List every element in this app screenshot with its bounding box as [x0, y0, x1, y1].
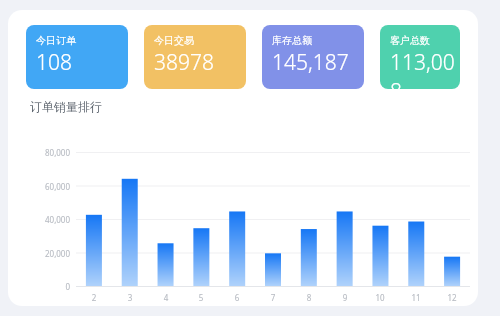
staticText: 108 — [36, 48, 72, 77]
staticText: 库存总额 — [272, 34, 312, 47]
staticText: 今日订单 — [36, 34, 76, 47]
staticText: 6 — [223, 292, 251, 303]
staticText: 60,000 — [22, 181, 70, 192]
staticText: 0 — [22, 281, 70, 292]
button[interactable]: 今日交易 — [144, 25, 246, 89]
staticText: 80,000 — [22, 147, 70, 158]
staticText: 20,000 — [22, 248, 70, 259]
button[interactable]: 库存总额 — [262, 25, 364, 89]
staticText: 7 — [259, 292, 287, 303]
staticText: 12 — [438, 292, 466, 303]
button[interactable]: 今日订单 — [26, 25, 128, 89]
staticText: 11 — [402, 292, 430, 303]
staticText: 2 — [80, 292, 108, 303]
staticText: 8 — [295, 292, 323, 303]
staticText: 38978 — [154, 48, 214, 77]
staticText: 40,000 — [22, 214, 70, 225]
staticText: 113,008 — [390, 48, 460, 89]
staticText: 今日交易 — [154, 34, 194, 47]
staticText: 9 — [331, 292, 359, 303]
button[interactable]: 客户总数 — [380, 25, 460, 89]
staticText: 4 — [152, 292, 180, 303]
staticText: 10 — [366, 292, 394, 303]
staticText: 客户总数 — [390, 34, 430, 47]
staticText: 145,187 — [272, 48, 349, 77]
staticText: 3 — [116, 292, 144, 303]
staticText: 5 — [187, 292, 215, 303]
staticText: 订单销量排行 — [30, 99, 102, 114]
